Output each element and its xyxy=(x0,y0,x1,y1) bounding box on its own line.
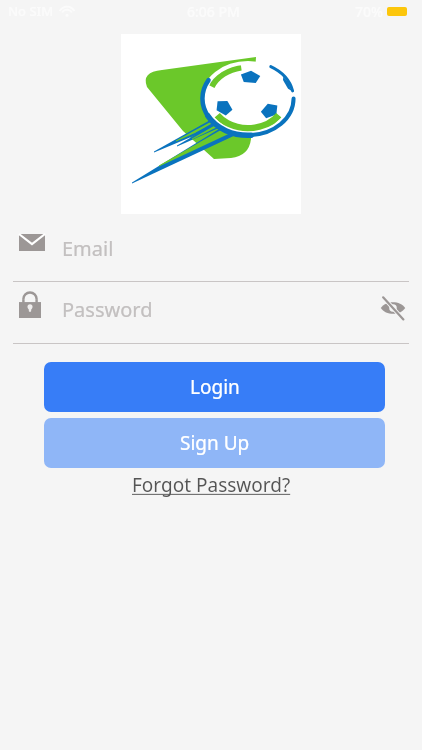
button[interactable]: Login xyxy=(44,362,385,412)
button[interactable]: Forgot Password? xyxy=(132,472,291,498)
staticText: Email xyxy=(62,235,114,262)
button[interactable]: Show password xyxy=(377,292,409,324)
staticText: Password xyxy=(62,296,153,323)
button[interactable]: Sign Up xyxy=(44,418,385,468)
button[interactable] xyxy=(0,219,422,278)
staticText: Login xyxy=(190,374,240,400)
staticText: Sign Up xyxy=(180,430,250,456)
button[interactable] xyxy=(0,280,422,339)
